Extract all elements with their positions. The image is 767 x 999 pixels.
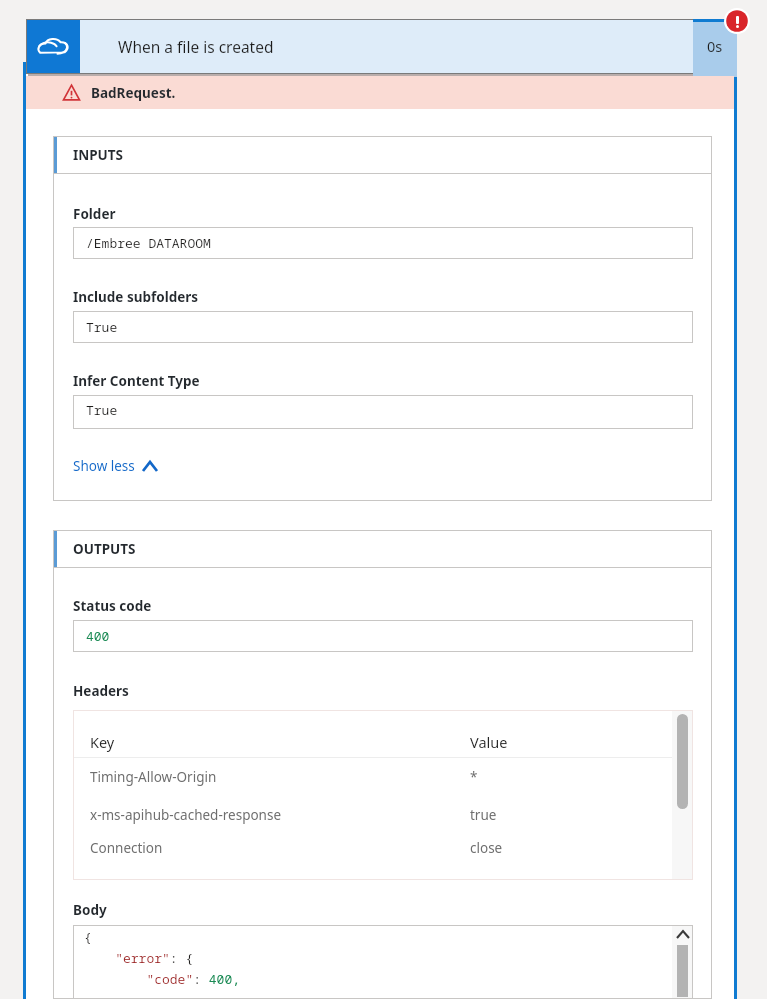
staticText: 0s bbox=[707, 36, 723, 56]
staticText: Show less bbox=[73, 457, 135, 475]
staticText: When a file is created bbox=[118, 36, 274, 57]
staticText: Folder bbox=[73, 205, 116, 223]
other: OneDrive bbox=[37, 36, 69, 57]
staticText: Connection bbox=[90, 839, 163, 857]
staticText: Status code bbox=[73, 597, 152, 615]
staticText: True bbox=[86, 318, 118, 336]
button[interactable]: 0s bbox=[693, 19, 737, 77]
staticText: Include subfolders bbox=[73, 288, 199, 306]
button[interactable]: /Embree DATAROOM bbox=[73, 227, 693, 259]
staticText: /Embree DATAROOM bbox=[86, 234, 211, 252]
staticText: Key bbox=[90, 732, 115, 752]
button[interactable]: Connection bbox=[90, 834, 673, 862]
button[interactable]: 400 bbox=[73, 620, 693, 652]
staticText: close bbox=[470, 839, 503, 857]
button[interactable]: Warning bbox=[26, 76, 734, 109]
staticText: x-ms-apihub-cached-response bbox=[90, 806, 282, 824]
staticText: INPUTS bbox=[73, 146, 124, 164]
button[interactable]: OUTPUTS bbox=[53, 530, 712, 568]
button[interactable]: Error bbox=[724, 8, 750, 34]
staticText: Infer Content Type bbox=[73, 372, 200, 390]
staticText: "code": 400, bbox=[84, 970, 241, 988]
staticText: OUTPUTS bbox=[73, 540, 136, 558]
button[interactable]: True bbox=[73, 311, 693, 343]
other: Warning bbox=[63, 84, 80, 101]
staticText: BadRequest. bbox=[91, 84, 176, 102]
staticText: True bbox=[86, 401, 118, 419]
staticText: Headers bbox=[73, 682, 129, 700]
button[interactable]: OneDrive bbox=[26, 19, 694, 74]
staticText: Timing-Allow-Origin bbox=[90, 768, 217, 786]
staticText: "error": { bbox=[84, 949, 194, 967]
button[interactable]: INPUTS bbox=[53, 136, 712, 174]
button[interactable]: Timing-Allow-Origin bbox=[90, 758, 673, 796]
staticText: 400 bbox=[86, 627, 110, 645]
staticText: Body bbox=[73, 901, 107, 919]
staticText: * bbox=[470, 768, 478, 786]
staticText: Value bbox=[470, 732, 508, 752]
staticText: { bbox=[84, 928, 92, 946]
staticText: true bbox=[470, 806, 497, 824]
button[interactable]: x-ms-apihub-cached-response bbox=[90, 796, 673, 834]
button[interactable]: Show less bbox=[73, 453, 157, 479]
